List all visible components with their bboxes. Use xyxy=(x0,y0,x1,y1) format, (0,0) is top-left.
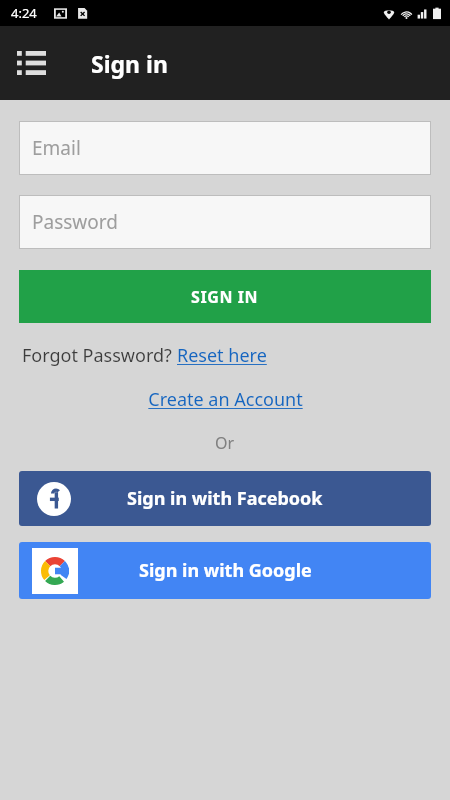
staticText: Password xyxy=(32,209,118,235)
staticText: SIGN IN xyxy=(191,286,259,308)
button[interactable]: Menu xyxy=(13,45,49,81)
button[interactable]: SIGN IN xyxy=(19,270,431,323)
staticText: Sign in xyxy=(91,48,168,79)
staticText: Sign in with Facebook xyxy=(127,486,323,511)
button[interactable]: Reset here xyxy=(177,343,267,368)
button[interactable]: Password xyxy=(19,195,431,249)
staticText: Or xyxy=(215,432,235,454)
button[interactable]: Email xyxy=(19,121,431,175)
staticText: Sign in with Google xyxy=(139,558,312,583)
button[interactable]: Sign in with Facebook xyxy=(19,471,431,526)
staticText: Reset here xyxy=(177,343,267,368)
staticText: 4:24 xyxy=(11,4,37,22)
button[interactable]: Sign in with Google xyxy=(19,542,431,599)
staticText: Email xyxy=(32,135,81,161)
staticText: Create an Account xyxy=(148,387,303,412)
staticText: Forgot Password? xyxy=(22,343,177,368)
button[interactable]: Create an Account xyxy=(148,387,303,412)
